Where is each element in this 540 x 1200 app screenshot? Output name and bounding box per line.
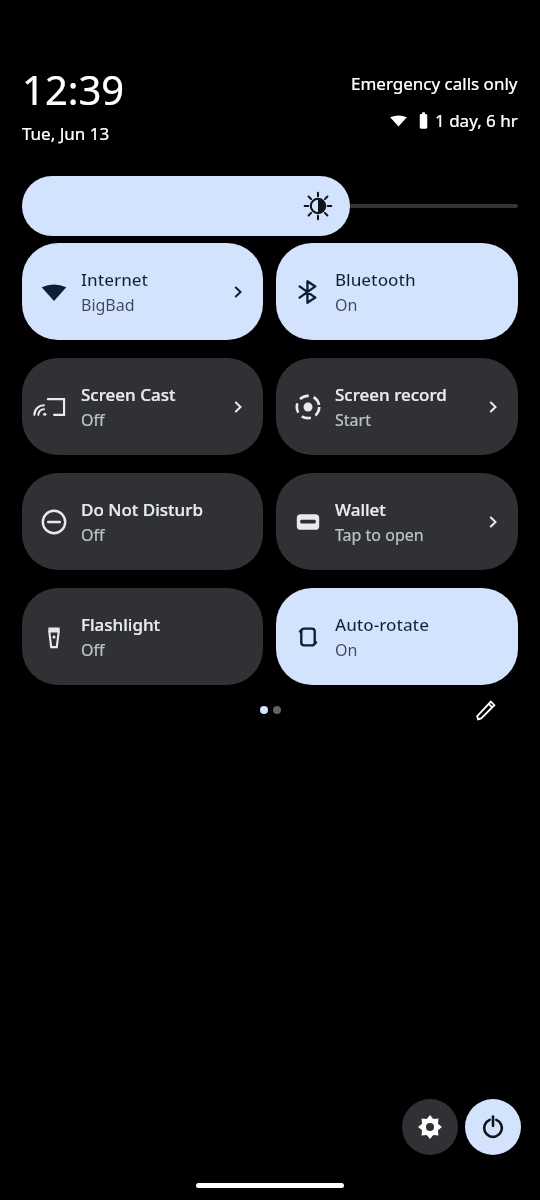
staticText: Wallet: [335, 498, 386, 521]
staticText: Bluetooth: [335, 268, 416, 291]
staticText: 1 day, 6 hr: [435, 109, 518, 132]
staticText: On: [335, 294, 358, 316]
button[interactable]: Auto-rotate: [276, 588, 518, 685]
staticText: On: [335, 639, 358, 661]
button[interactable]: Edit tiles: [466, 690, 506, 730]
staticText: Screen record: [335, 383, 447, 406]
button[interactable]: [22, 175, 518, 237]
staticText: Tap to open: [335, 524, 424, 546]
staticText: Tue, Jun 13: [22, 122, 110, 145]
button[interactable]: Power: [465, 1099, 521, 1155]
staticText: Off: [81, 524, 105, 546]
staticText: Flashlight: [81, 613, 161, 636]
button[interactable]: Settings: [402, 1099, 458, 1155]
staticText: Internet: [81, 268, 149, 291]
button[interactable]: Do Not Disturb: [22, 473, 263, 570]
button[interactable]: Bluetooth: [276, 243, 518, 340]
button[interactable]: Screen Cast: [22, 358, 263, 455]
staticText: Start: [335, 409, 371, 431]
button[interactable]: Internet: [22, 243, 263, 340]
staticText: BigBad: [81, 294, 135, 316]
button[interactable]: Flashlight: [22, 588, 263, 685]
staticText: Do Not Disturb: [81, 498, 203, 521]
button[interactable]: Wallet: [276, 473, 518, 570]
staticText: Emergency calls only: [351, 72, 518, 95]
staticText: Auto-rotate: [335, 613, 429, 636]
button[interactable]: Screen record: [276, 358, 518, 455]
staticText: Off: [81, 409, 105, 431]
staticText: 12:39: [22, 62, 125, 116]
staticText: Off: [81, 639, 105, 661]
staticText: Screen Cast: [81, 383, 176, 406]
